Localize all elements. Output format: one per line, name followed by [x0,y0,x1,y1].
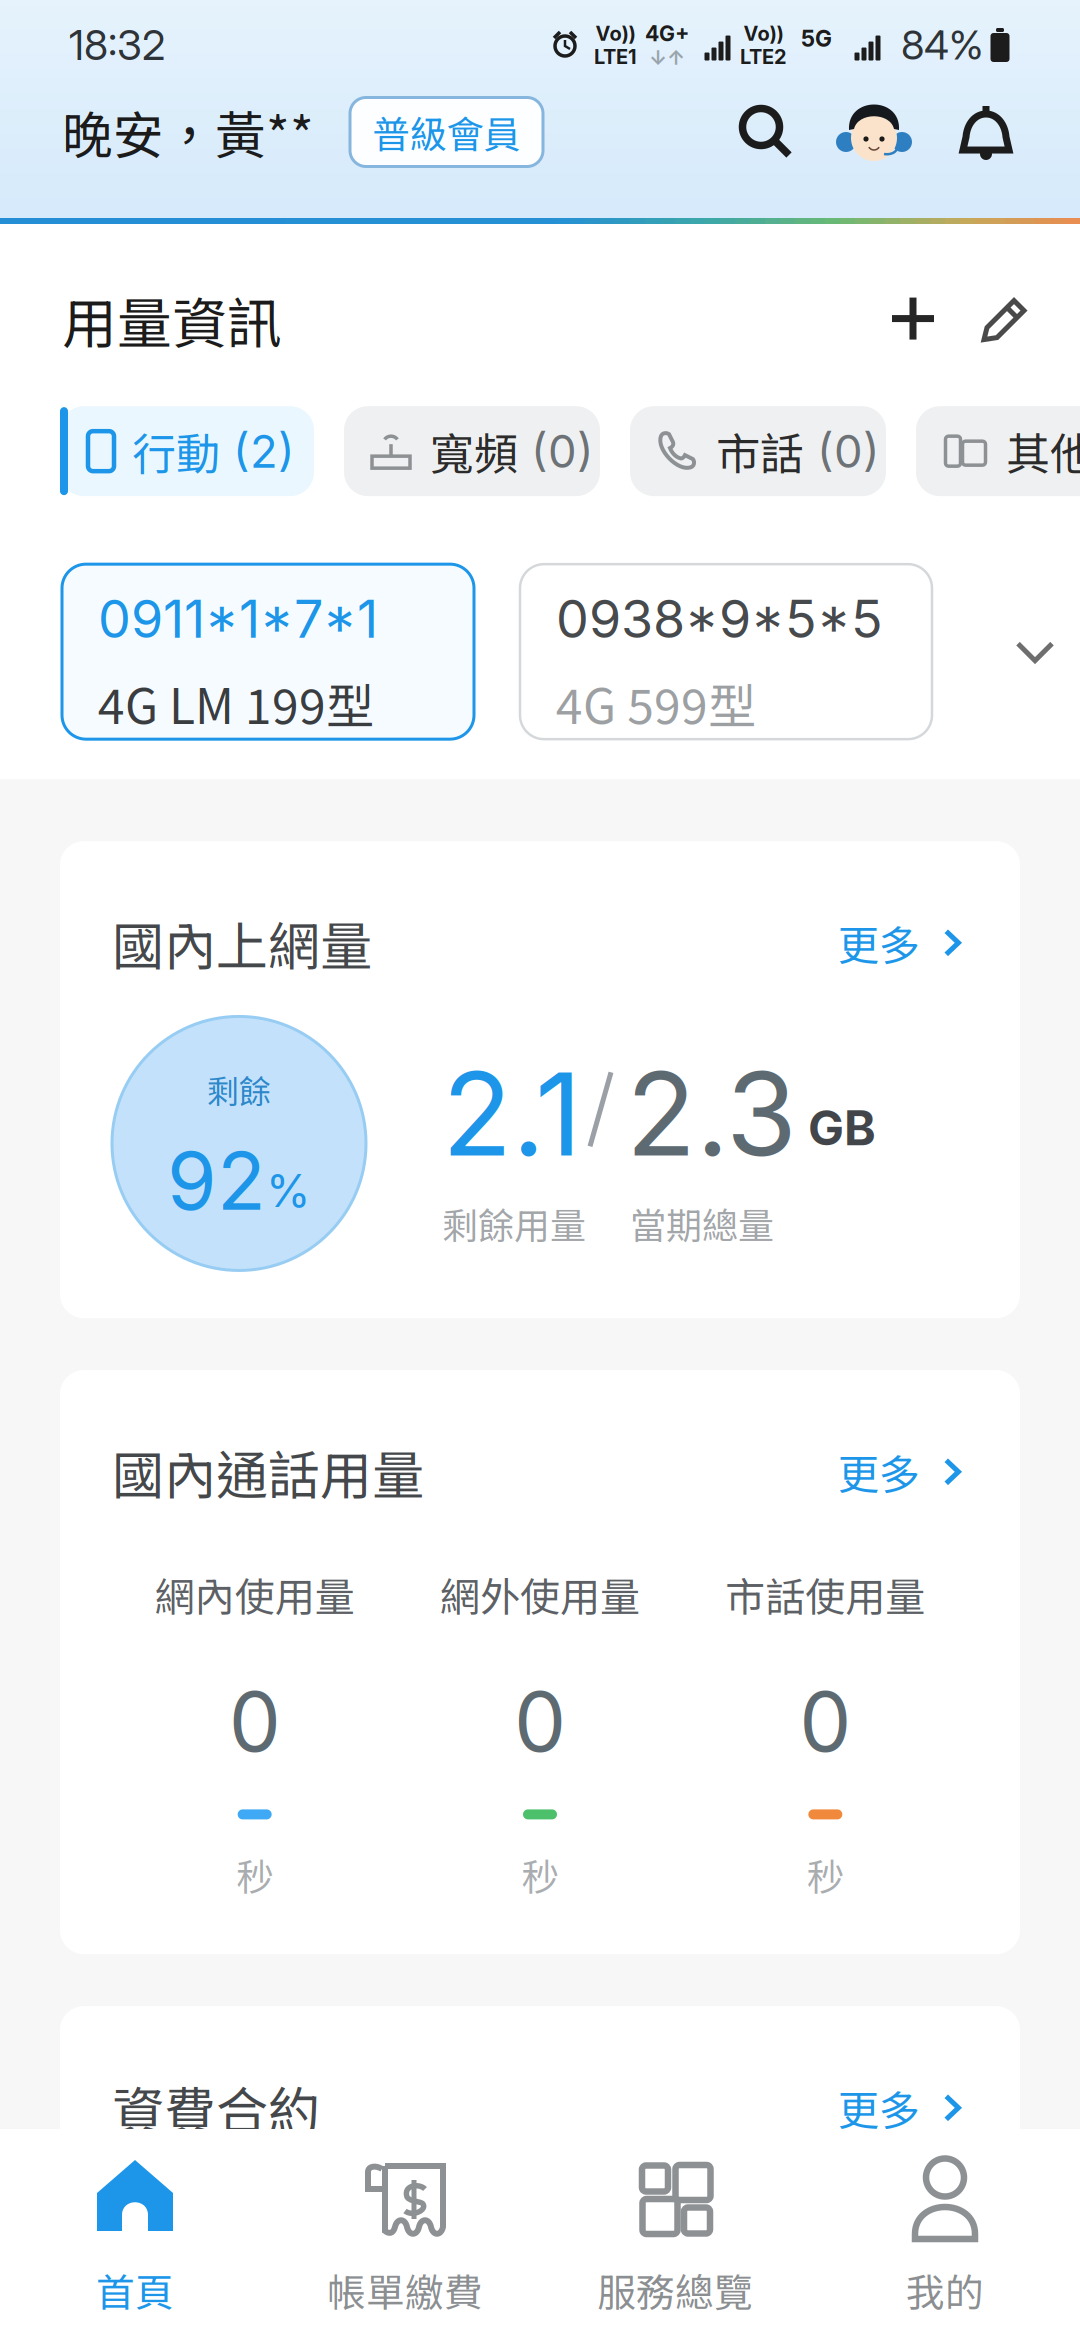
staticText: 用量資訊 [62,280,282,359]
staticText: 秒 [807,1847,844,1901]
staticText: 更多 [838,1442,920,1502]
staticText: 普級會員 [372,105,520,159]
staticText: 當期總量 [630,1197,774,1249]
staticText: 帳單繳費 [327,2262,483,2318]
staticText: % [266,1163,311,1218]
staticText: 18:32 [69,20,165,70]
staticText: 剩餘用量 [442,1197,586,1249]
staticText: 網內使用量 [155,1565,355,1623]
button[interactable]: 0911*1*7*1 [62,564,474,739]
button[interactable]: 首頁 [0,2129,270,2340]
staticText: 市話 [716,419,804,483]
staticText: 秒 [236,1847,273,1901]
button[interactable]: 市話 [630,406,886,496]
staticText: 秒 [521,1847,558,1901]
staticText: ↓↑ [649,45,685,69]
button[interactable]: 客服 [836,98,912,166]
staticText: GB [797,1099,876,1157]
staticText: 網外使用量 [440,1565,640,1623]
staticText: 2.1 [442,1044,582,1183]
staticText: Vo)) [743,21,783,45]
staticText: 國內通話用量 [112,1434,424,1509]
staticText: 0 [514,1671,566,1771]
staticText: 84% [901,21,983,69]
staticText: 我的 [906,2262,984,2318]
staticText: 0 [229,1671,281,1771]
staticText: 寬頻 [430,419,518,483]
staticText: 4G 599型 [556,668,756,738]
staticText: 首頁 [96,2262,174,2318]
staticText: 4G LM 199型 [98,668,374,738]
button[interactable]: 帳單繳費 [270,2129,540,2340]
staticText: 其他 [1006,419,1080,483]
button[interactable]: 通知 [960,104,1012,160]
button[interactable]: 行動 [60,406,314,496]
staticText: LTE1 [594,44,637,69]
staticText: 剩餘 [207,1066,271,1112]
staticText: 服務總覽 [597,2262,753,2318]
button[interactable]: 0938*9*5*5 [520,564,932,739]
staticText: 國內上網量 [112,905,372,980]
staticText: 0938*9*5*5 [556,587,883,650]
staticText: 市話使用量 [725,1565,925,1623]
staticText: 行動 [132,419,220,483]
staticText: 5G [801,25,832,52]
staticText: 92 [167,1132,266,1229]
button[interactable]: 更多 [838,1442,968,1502]
staticText: 晚安，黃** [62,95,314,169]
button[interactable]: 搜尋 [738,104,794,160]
button[interactable]: 編輯 [980,296,1028,344]
staticText: 更多 [838,913,920,973]
staticText: LTE2 [740,44,787,69]
staticText: (0) [804,424,880,479]
button[interactable]: 我的 [810,2129,1080,2340]
button[interactable]: 新增 [890,297,936,343]
button[interactable]: 其他 [916,406,1080,496]
staticText: (0) [518,424,594,479]
staticText: 資費合約 [112,2070,320,2145]
staticText: 0911*1*7*1 [98,587,378,650]
button[interactable]: 服務總覽 [540,2129,810,2340]
button[interactable]: 更多 [838,2078,968,2138]
button[interactable]: 寬頻 [344,406,600,496]
staticText: 0 [799,1671,851,1771]
staticText: 2.3 [626,1044,797,1183]
staticText: Vo)) [595,21,635,45]
staticText: 4G+ [645,20,689,46]
staticText: 更多 [838,2078,920,2138]
button[interactable]: 展開 [1014,629,1056,675]
button[interactable]: 普級會員 [350,97,543,166]
staticText: (2) [220,424,295,479]
button[interactable]: 更多 [838,913,968,973]
